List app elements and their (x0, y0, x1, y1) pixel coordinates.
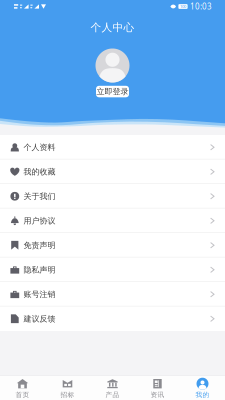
staticText: 首页 (15, 391, 29, 399)
button[interactable]: 账号注销 (0, 282, 225, 306)
staticText: 建议反馈 (23, 314, 55, 324)
staticText: 立即登录 (96, 87, 128, 96)
button[interactable]: 我的 (180, 376, 225, 400)
button[interactable]: 立即登录 (96, 86, 129, 97)
staticText: 用户协议 (23, 216, 55, 226)
staticText: 10:03 (190, 1, 212, 12)
button[interactable]: 我的收藏 (0, 159, 225, 184)
button[interactable]: 用户协议 (0, 208, 225, 233)
button[interactable]: 资讯 (135, 376, 180, 400)
staticText: 100 (180, 4, 186, 9)
button[interactable]: 关于我们 (0, 184, 225, 208)
button[interactable]: 招标 (45, 376, 90, 400)
button[interactable]: 首页 (0, 376, 45, 400)
staticText: 免责声明 (23, 240, 55, 250)
staticText: 我的收藏 (23, 167, 55, 177)
staticText: 我的 (195, 391, 209, 399)
staticText: 个人中心 (90, 21, 134, 34)
staticText: 资讯 (150, 391, 164, 399)
staticText: 招标 (60, 391, 74, 399)
staticText: 个人资料 (23, 142, 55, 152)
button[interactable]: 产品 (90, 376, 135, 400)
button[interactable]: 免责声明 (0, 233, 225, 257)
button[interactable]: 建议反馈 (0, 306, 225, 331)
button[interactable]: 隐私声明 (0, 257, 225, 282)
button[interactable]: 个人资料 (0, 135, 225, 159)
staticText: 账号注销 (23, 289, 55, 299)
staticText: 关于我们 (23, 191, 55, 201)
staticText: 产品 (105, 391, 119, 399)
staticText: 隐私声明 (23, 265, 55, 275)
